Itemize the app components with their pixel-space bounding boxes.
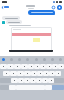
- button[interactable]: [46, 64, 52, 69]
- button[interactable]: [48, 78, 54, 83]
- button[interactable]: [36, 78, 42, 83]
- button[interactable]: [21, 64, 28, 69]
- button[interactable]: [24, 71, 31, 76]
- button[interactable]: [37, 71, 43, 76]
- button[interactable]: [52, 64, 58, 69]
- button[interactable]: Period: [45, 85, 52, 90]
- button[interactable]: [11, 78, 18, 83]
- button[interactable]: Keyboard tool: [59, 58, 62, 61]
- button[interactable]: Keyboard tool: [43, 58, 46, 61]
- button[interactable]: [43, 71, 49, 76]
- button[interactable]: Back: [1, 4, 9, 10]
- button[interactable]: Keyboard tool: [51, 58, 54, 61]
- button[interactable]: [28, 10, 55, 15]
- button[interactable]: [3, 71, 10, 76]
- button[interactable]: [42, 78, 48, 83]
- button[interactable]: [40, 64, 46, 69]
- button[interactable]: [30, 78, 36, 83]
- button[interactable]: [31, 71, 37, 76]
- button[interactable]: [7, 64, 14, 69]
- button[interactable]: [10, 71, 17, 76]
- button[interactable]: [18, 78, 24, 83]
- button[interactable]: Shared photo: [11, 27, 52, 51]
- button[interactable]: [17, 71, 24, 76]
- button[interactable]: [34, 64, 40, 69]
- button[interactable]: [49, 71, 55, 76]
- button[interactable]: Google: [2, 58, 5, 61]
- button[interactable]: Video call: [57, 5, 62, 10]
- button[interactable]: [6, 20, 22, 24]
- button[interactable]: [14, 64, 21, 69]
- button[interactable]: Keyboard tool: [18, 58, 21, 61]
- button[interactable]: [58, 64, 64, 69]
- button[interactable]: [2, 16, 20, 20]
- button[interactable]: [55, 71, 61, 76]
- button[interactable]: Call: [51, 5, 56, 10]
- button[interactable]: [28, 64, 34, 69]
- button[interactable]: Keyboard tool: [26, 58, 29, 61]
- button[interactable]: Keyboard tool: [35, 58, 38, 61]
- button[interactable]: [24, 78, 30, 83]
- button[interactable]: Keyboard tool: [10, 58, 13, 61]
- button[interactable]: [0, 64, 7, 69]
- button[interactable]: Comma: [9, 85, 16, 90]
